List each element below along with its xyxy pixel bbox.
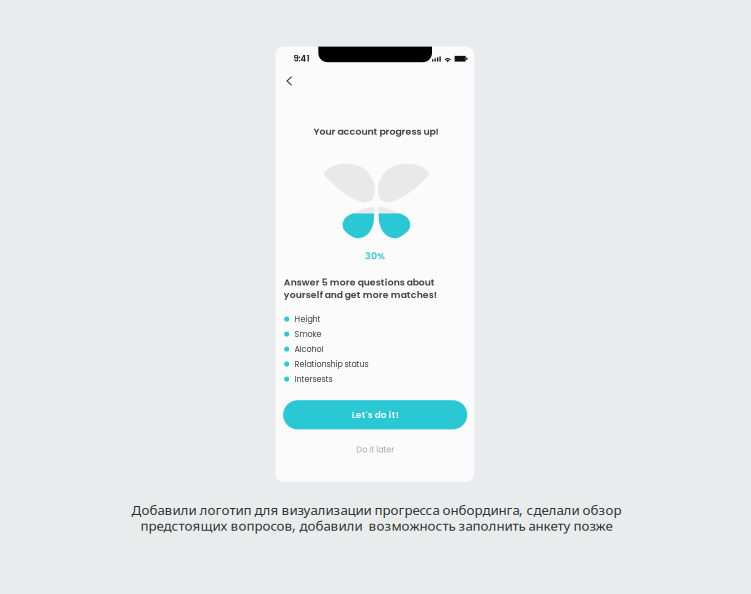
staticText: Добавили логотип для визуализации прогре… bbox=[131, 501, 621, 519]
button[interactable]: Do it later bbox=[283, 439, 467, 461]
staticText: 9:41 bbox=[293, 53, 309, 64]
staticText: Relationship status bbox=[294, 358, 368, 370]
staticText: Your account progress up! bbox=[313, 125, 438, 138]
staticText: Let's do it! bbox=[352, 408, 399, 421]
staticText: Smoke bbox=[294, 328, 321, 340]
staticText: Do it later bbox=[356, 444, 394, 455]
staticText: 30% bbox=[365, 249, 385, 262]
staticText: предстоящих вопросов, добавили возможнос… bbox=[140, 516, 612, 535]
button[interactable]: Let's do it! bbox=[283, 400, 467, 429]
staticText: yourself and get more matches! bbox=[284, 288, 437, 301]
button[interactable]: Back bbox=[278, 70, 300, 92]
staticText: Intersests bbox=[294, 373, 332, 385]
staticText: Alcohol bbox=[294, 343, 323, 355]
staticText: Height bbox=[294, 313, 320, 325]
staticText: Answer 5 more questions about bbox=[284, 276, 435, 289]
